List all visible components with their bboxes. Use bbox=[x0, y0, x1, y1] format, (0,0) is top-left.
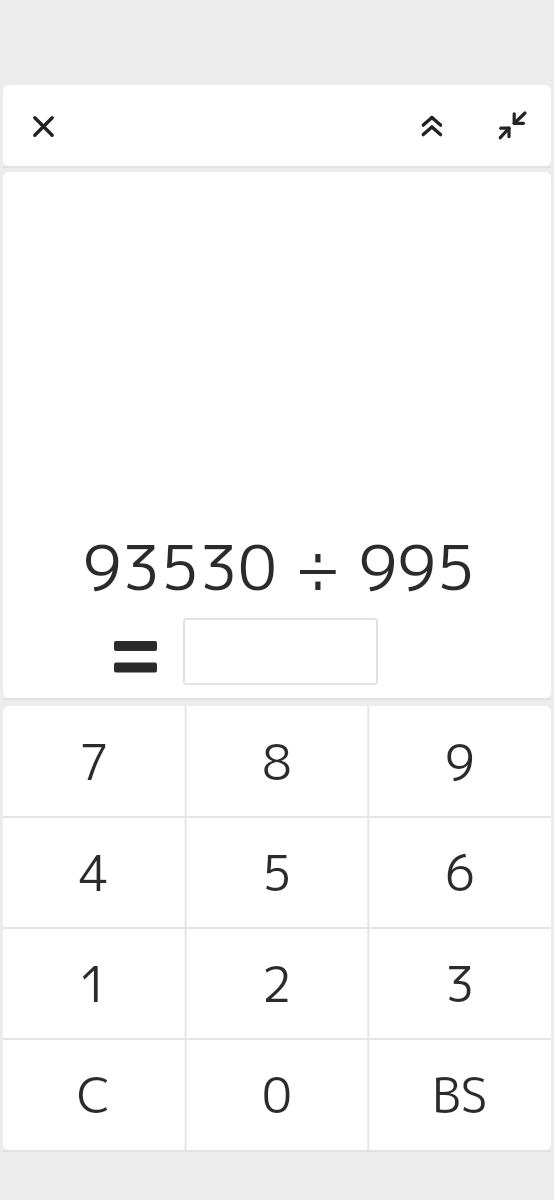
button[interactable] bbox=[183, 618, 378, 685]
button[interactable]: 2 bbox=[185, 928, 368, 1039]
staticText: 7 bbox=[79, 728, 109, 795]
button[interactable]: 9 bbox=[368, 706, 551, 817]
button[interactable]: 4 bbox=[3, 817, 185, 928]
staticText: 6 bbox=[445, 839, 475, 906]
staticText: 0 bbox=[262, 1061, 292, 1128]
button[interactable]: 6 bbox=[368, 817, 551, 928]
staticText: 4 bbox=[79, 839, 109, 906]
staticText: 2 bbox=[262, 950, 292, 1017]
button[interactable] bbox=[23, 106, 64, 147]
staticText: 9 bbox=[445, 728, 475, 795]
button[interactable] bbox=[492, 104, 533, 145]
button[interactable]: 5 bbox=[185, 817, 368, 928]
staticText: BS bbox=[432, 1061, 488, 1128]
staticText: 8 bbox=[262, 728, 292, 795]
button[interactable]: C bbox=[3, 1039, 185, 1150]
button[interactable]: 1 bbox=[3, 928, 185, 1039]
button[interactable]: 7 bbox=[3, 706, 185, 817]
staticText: 3 bbox=[445, 950, 475, 1017]
staticText: 5 bbox=[262, 839, 292, 906]
button[interactable]: 8 bbox=[185, 706, 368, 817]
button[interactable] bbox=[411, 105, 452, 146]
staticText: 1 bbox=[79, 950, 109, 1017]
button[interactable]: BS bbox=[368, 1039, 551, 1150]
staticText: 93530 ÷ 995 bbox=[83, 523, 476, 603]
staticText: C bbox=[77, 1061, 111, 1128]
button[interactable]: 0 bbox=[185, 1039, 368, 1150]
button[interactable]: 3 bbox=[368, 928, 551, 1039]
